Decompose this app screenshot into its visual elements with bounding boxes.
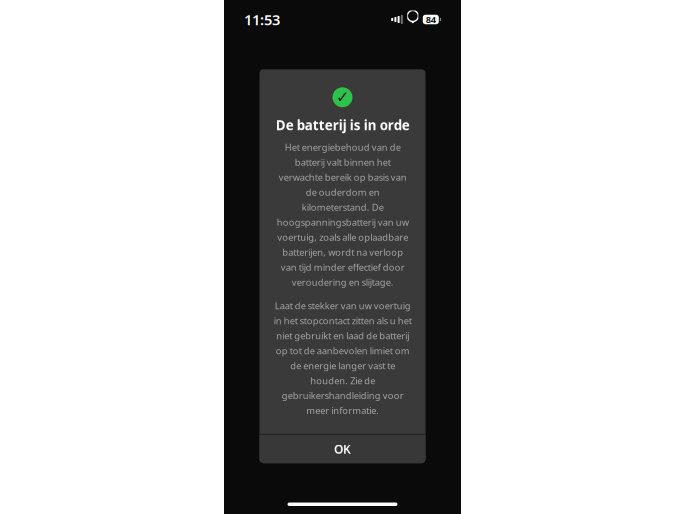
staticText: Laat de stekker van uw voertuig in het s… [273,299,411,417]
button[interactable]: OK [259,435,425,463]
staticText: 84 [426,13,436,26]
staticText: De batterij is in orde [275,116,409,134]
staticText: 11:53 [244,10,280,29]
staticText: Het energiebehoud van de batterij valt b… [276,141,408,288]
staticText: OK [334,441,351,457]
staticText: ✓ [336,88,349,106]
